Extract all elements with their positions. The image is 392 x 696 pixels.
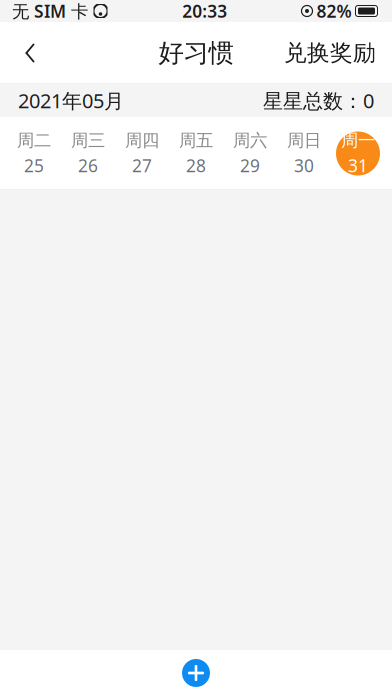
- staticText: 27: [132, 154, 152, 177]
- staticText: 周六: [233, 130, 267, 151]
- staticText: 28: [186, 154, 206, 177]
- button[interactable]: 周二: [7, 128, 61, 178]
- button[interactable]: 周三: [61, 128, 115, 178]
- staticText: 82%: [316, 0, 351, 22]
- staticText: 周四: [125, 130, 159, 151]
- staticText: 星星总数：0: [263, 87, 374, 114]
- button[interactable]: 周日: [277, 128, 331, 178]
- button[interactable]: 返回: [8, 31, 52, 75]
- staticText: 兑换奖励: [284, 39, 376, 67]
- staticText: 周三: [71, 130, 105, 151]
- button[interactable]: 周六: [223, 128, 277, 178]
- staticText: 好习惯: [158, 37, 233, 68]
- button[interactable]: 添加习惯: [173, 650, 219, 696]
- staticText: 周日: [287, 130, 321, 151]
- button[interactable]: 周五: [169, 128, 223, 178]
- button[interactable]: 兑换奖励: [276, 31, 384, 75]
- staticText: 29: [240, 154, 260, 177]
- staticText: 20:33: [182, 0, 227, 22]
- staticText: 周二: [17, 130, 51, 151]
- staticText: 25: [24, 154, 44, 177]
- button[interactable]: 周四: [115, 128, 169, 178]
- staticText: 周一: [341, 130, 375, 151]
- staticText: 周五: [179, 130, 213, 151]
- staticText: 30: [294, 154, 314, 177]
- staticText: 26: [78, 154, 98, 177]
- staticText: 2021年05月: [18, 87, 124, 114]
- staticText: 31: [348, 154, 368, 177]
- button[interactable]: 周一: [331, 128, 385, 178]
- staticText: 无 SIM 卡: [12, 0, 88, 22]
